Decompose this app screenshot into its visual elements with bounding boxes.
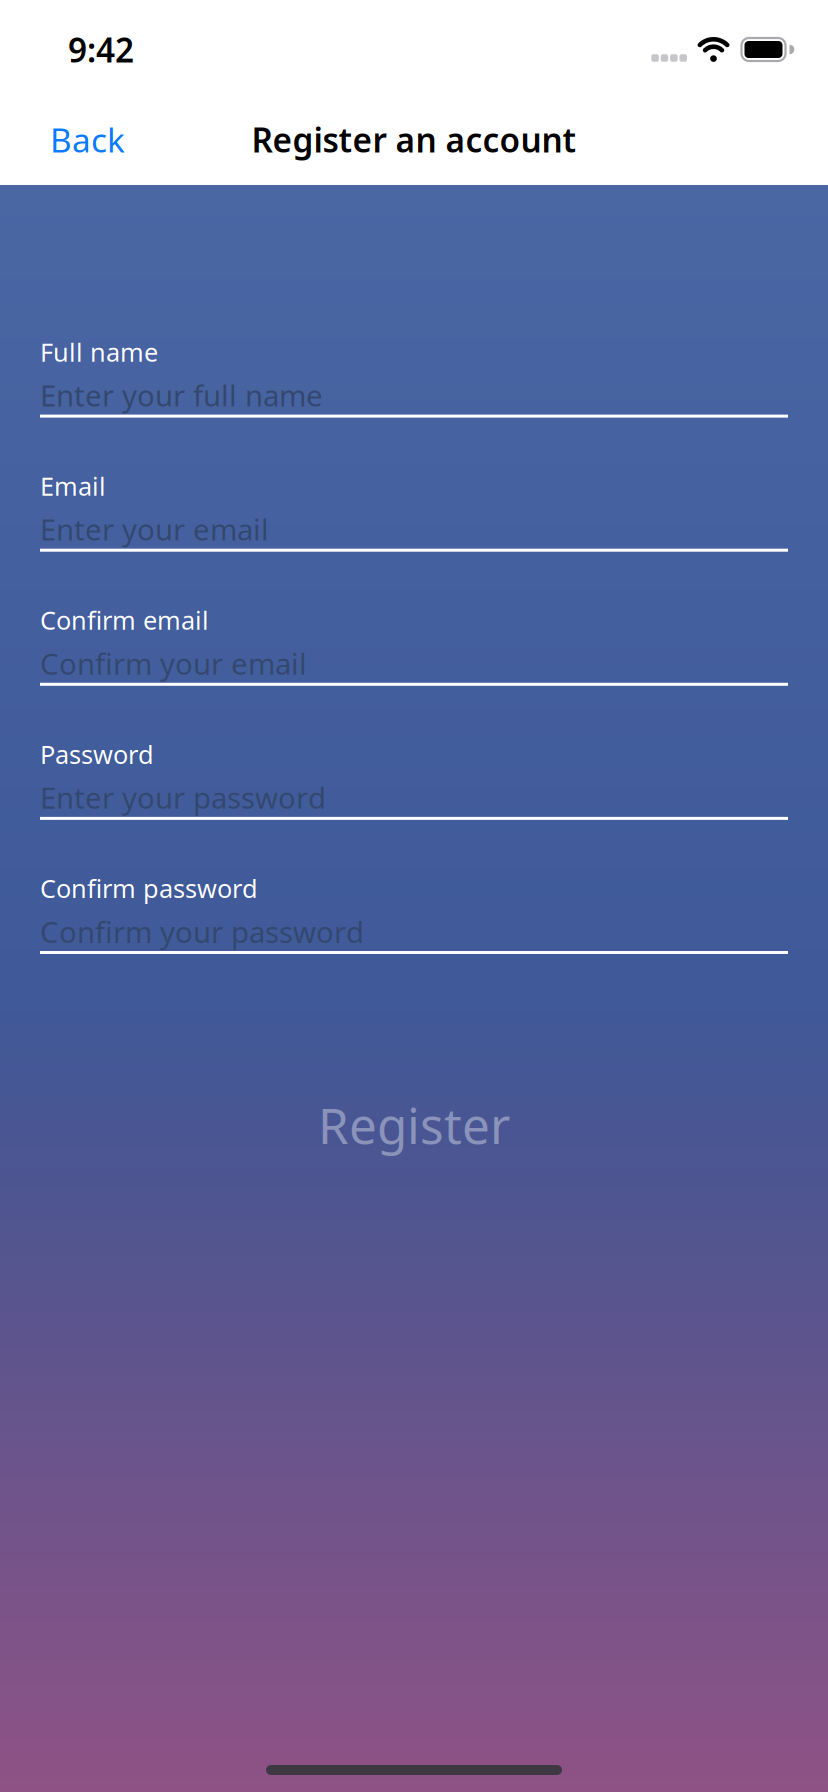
button[interactable]: Enter your password	[40, 771, 788, 820]
button[interactable]: Register	[318, 1092, 510, 1157]
button[interactable]: Enter your email	[40, 503, 788, 552]
staticText: Confirm your password	[40, 912, 364, 951]
button[interactable]: Confirm your email	[40, 637, 788, 686]
staticText: Enter your password	[40, 778, 326, 817]
staticText: Confirm your email	[40, 644, 307, 683]
staticText: Full name	[40, 335, 158, 369]
staticText: Enter your full name	[40, 376, 323, 415]
button[interactable]: Enter your full name	[40, 369, 788, 418]
staticText: Register an account	[251, 117, 576, 162]
staticText: Enter your email	[40, 510, 269, 549]
staticText: Password	[40, 737, 154, 771]
button[interactable]: Back	[0, 117, 125, 162]
staticText: 9:42	[68, 27, 134, 72]
staticText: Confirm email	[40, 603, 209, 637]
staticText: Email	[40, 469, 106, 503]
staticText: Confirm password	[40, 871, 258, 905]
staticText: Register	[318, 1092, 510, 1157]
button[interactable]: Confirm your password	[40, 905, 788, 954]
staticText: Back	[50, 117, 125, 162]
